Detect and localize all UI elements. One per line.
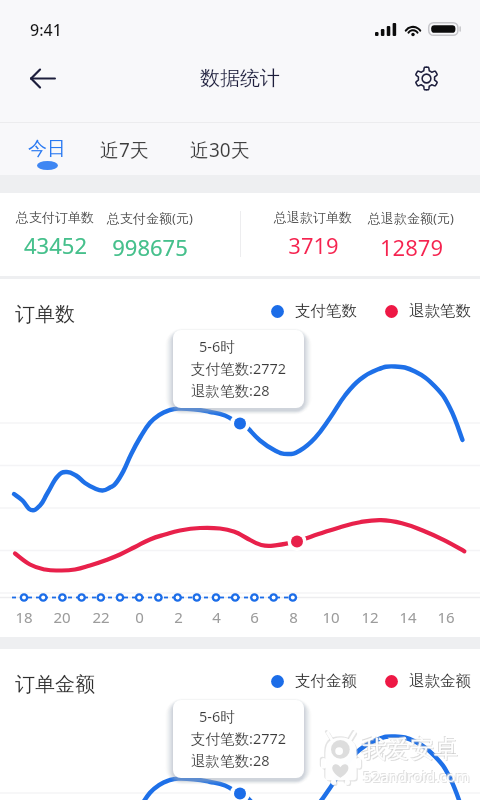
staticText: 22 [92,607,110,627]
staticText: 5-6时 [199,706,235,726]
button[interactable]: 支付笔数 [271,301,357,321]
staticText: 14 [399,607,417,627]
staticText: 总退款金额(元) [368,209,454,227]
staticText: 43452 [24,230,87,260]
staticText: 支付笔数:2772 [191,728,287,748]
staticText: 支付金额 [295,671,357,691]
staticText: 订单数 [15,302,75,327]
staticText: 我爱安卓 [361,733,457,763]
staticText: 12879 [380,232,443,262]
staticText: 今日 [28,137,66,161]
staticText: 998675 [112,232,188,262]
button[interactable]: 近7天 [87,123,161,175]
staticText: 8 [289,607,298,627]
staticText: 3719 [288,230,339,260]
button[interactable]: Back [21,56,65,100]
button[interactable]: 退款笔数 [385,301,471,321]
button[interactable]: 支付金额 [271,671,357,691]
button[interactable]: 总支付订单数 [0,193,113,276]
staticText: 我爱安卓 [362,734,458,764]
staticText: 6 [250,607,259,627]
staticText: 退款笔数:28 [191,380,270,400]
staticText: 5-6时 [199,336,235,356]
staticText: 退款笔数:28 [191,750,270,770]
staticText: 52android.com [362,765,469,785]
staticText: 16 [437,607,455,627]
button[interactable]: 退款金额 [385,671,471,691]
staticText: 数据统计 [200,66,280,91]
button[interactable]: 近30天 [183,123,257,175]
staticText: 0 [135,607,144,627]
staticText: 支付笔数 [295,301,357,321]
staticText: 退款金额 [409,671,471,691]
staticText: 近30天 [190,137,250,163]
staticText: 12 [361,607,379,627]
staticText: 近7天 [100,137,149,163]
staticText: 总支付订单数 [16,209,94,225]
staticText: 2 [174,607,183,627]
button[interactable]: 今日 [10,123,84,175]
button[interactable]: Settings [404,56,448,100]
staticText: 支付笔数:2772 [191,358,287,378]
staticText: 我爱安卓 [363,735,459,765]
staticText: 订单金额 [15,672,95,697]
staticText: 10 [322,607,340,627]
staticText: 20 [53,607,71,627]
staticText: 9:41 [30,19,62,41]
button[interactable]: 总退款金额(元) [353,193,469,276]
staticText: 4 [212,607,221,627]
staticText: 18 [15,607,33,627]
staticText: 总支付金额(元) [107,209,193,227]
staticText: 总退款订单数 [274,209,352,225]
button[interactable]: 总退款订单数 [255,193,371,276]
button[interactable]: 总支付金额(元) [92,193,208,276]
staticText: 52android.com [364,767,471,787]
staticText: 52android.com [363,766,470,786]
staticText: 退款笔数 [409,301,471,321]
